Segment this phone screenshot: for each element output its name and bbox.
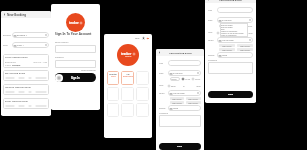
button[interactable] <box>107 103 119 117</box>
other: Back <box>207 0 210 1</box>
button[interactable]: Forgot Password? <box>81 69 96 71</box>
button[interactable]: Weekly on Wednesday <box>221 30 247 32</box>
staticText: tracker <box>69 21 79 25</box>
button[interactable]: Monthly on the Second Sunday <box>221 32 247 34</box>
button[interactable] <box>136 71 149 85</box>
button[interactable]: Small Room 4 <box>186 101 201 104</box>
button[interactable]: Big Meeting Room <box>3 70 49 81</box>
staticText: Weekly <box>171 78 177 80</box>
staticText: 01/09/2021 <box>173 72 184 75</box>
staticText: Title <box>208 9 217 12</box>
button[interactable]: Save <box>159 143 201 150</box>
staticText: Invite <box>173 107 179 110</box>
staticText: Comments <box>159 112 169 114</box>
button[interactable]: Building A <box>12 32 49 38</box>
button[interactable]: 01/09/2021 <box>217 17 253 23</box>
staticText: Floor <box>3 44 12 47</box>
button[interactable]: Invite <box>168 105 201 111</box>
staticText: Small Room 1 <box>172 98 183 100</box>
staticText: 4 seats <box>5 64 12 66</box>
button[interactable] <box>121 87 134 101</box>
staticText: Email Address* <box>55 41 69 44</box>
button[interactable] <box>55 45 96 53</box>
button[interactable]: Logout <box>146 37 149 40</box>
button[interactable] <box>217 7 253 13</box>
button[interactable] <box>136 87 149 101</box>
button[interactable]: Option <box>182 78 184 80</box>
button[interactable]: Floor 1 <box>12 42 49 48</box>
button[interactable]: Back <box>1 11 51 18</box>
button[interactable]: Small Room 1 <box>170 97 184 100</box>
staticText: Booking <box>3 34 12 37</box>
button[interactable]: Does not repeat <box>221 26 247 28</box>
button[interactable]: Medium Meeting Room <box>3 84 49 95</box>
button[interactable]: Sign In <box>55 73 96 82</box>
button[interactable]: Does not repeat <box>221 24 247 26</box>
staticText: Reservation <box>123 75 133 77</box>
staticText: Small Meeting Room <box>5 56 28 59</box>
button[interactable]: Event Meeting Room <box>3 98 49 109</box>
button[interactable]: Small Room 2 <box>237 44 253 47</box>
button[interactable]: Back <box>156 49 204 56</box>
button[interactable]: Yearly on Wednesday <box>221 34 247 36</box>
staticText: Save <box>228 93 234 96</box>
button[interactable]: Back <box>205 0 256 3</box>
button[interactable]: Daily <box>221 28 247 30</box>
button[interactable]: Profile <box>142 37 145 40</box>
button[interactable]: Add To Room <box>168 90 201 96</box>
staticText: 09:00 <box>220 32 225 34</box>
staticText: 09:00 <box>171 85 176 87</box>
button[interactable] <box>168 60 201 66</box>
button[interactable]: Small Room 1 <box>219 44 235 47</box>
button[interactable]: Small Room 3 <box>219 48 235 51</box>
staticText: Date <box>208 19 217 22</box>
button[interactable] <box>55 60 96 68</box>
staticText: Invite <box>222 54 228 57</box>
staticText: Desktop <box>109 73 117 75</box>
staticText: Small Room 2 <box>188 98 199 100</box>
button[interactable] <box>107 87 119 101</box>
staticText: Weekly <box>220 25 226 27</box>
button[interactable] <box>136 103 149 117</box>
button[interactable]: Add To Room <box>217 37 253 43</box>
staticText: Big Meeting Room <box>5 72 26 75</box>
staticText: Title <box>159 62 168 65</box>
button[interactable]: Small Room 3 <box>170 101 184 104</box>
button[interactable]: Invite <box>217 52 253 58</box>
button[interactable]: Weekly <box>170 77 180 81</box>
staticText: Booking Info <box>5 61 16 63</box>
button[interactable]: Small Meeting Room <box>3 54 49 68</box>
button[interactable]: 01/09/2021 <box>168 70 201 76</box>
button[interactable] <box>208 62 253 74</box>
button[interactable]: Small Room 4 <box>237 48 253 51</box>
button[interactable]: Car <box>121 71 134 85</box>
button[interactable]: Save <box>135 37 140 40</box>
button[interactable]: Save <box>208 91 253 98</box>
button[interactable] <box>121 103 134 117</box>
button[interactable]: Small Room 2 <box>186 97 201 100</box>
button[interactable]: Desktop <box>107 71 119 85</box>
staticText: Available <box>12 64 21 66</box>
staticText: Time <box>159 84 168 87</box>
button[interactable]: Weekly <box>219 24 232 28</box>
staticText: Small Room 2 <box>240 45 251 47</box>
staticText: to <box>234 32 236 34</box>
button[interactable] <box>159 115 201 127</box>
